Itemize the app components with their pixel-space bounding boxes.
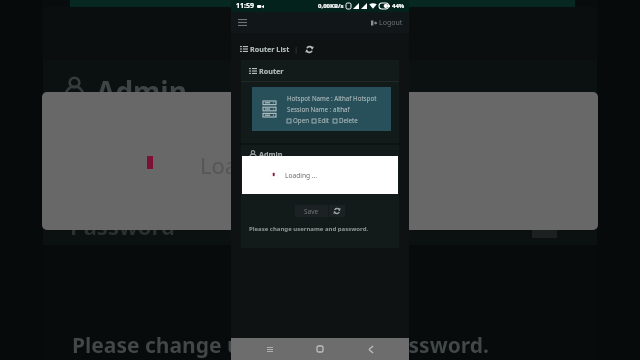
staticText: Please change username and password. bbox=[249, 225, 369, 233]
button[interactable]: Logout bbox=[365, 14, 409, 32]
staticText: Please change username and password. bbox=[72, 331, 489, 360]
staticText: | bbox=[294, 44, 299, 54]
staticText: 0,00KB/s bbox=[318, 2, 344, 10]
button[interactable]: Open navigation menu bbox=[231, 12, 253, 33]
button[interactable]: Hotspot Name : Althaf Hotspot bbox=[252, 87, 391, 131]
button[interactable]: Delete bbox=[333, 116, 358, 124]
staticText: Router List bbox=[250, 44, 290, 54]
staticText: 44% bbox=[392, 2, 405, 10]
staticText: Router bbox=[259, 66, 284, 76]
staticText: Password bbox=[70, 211, 175, 241]
button[interactable]: Back bbox=[359, 338, 383, 360]
staticText: Admin bbox=[96, 72, 187, 110]
staticText: Open bbox=[293, 116, 309, 124]
button[interactable]: Recents bbox=[258, 338, 282, 360]
staticText: Delete bbox=[339, 116, 358, 124]
button[interactable]: Save bbox=[295, 205, 328, 217]
staticText: Loading ... bbox=[285, 171, 318, 180]
staticText: Loading ... bbox=[200, 150, 307, 180]
staticText: Edit bbox=[318, 116, 330, 124]
staticText: Save bbox=[304, 207, 319, 216]
button[interactable]: Home bbox=[308, 338, 332, 360]
staticText: Session Name : althaf bbox=[287, 105, 350, 113]
button[interactable]: Refresh bbox=[329, 205, 345, 217]
button[interactable]: Refresh bbox=[303, 43, 315, 55]
staticText: Hotspot Name : Althaf Hotspot bbox=[287, 94, 377, 102]
staticText: Logout bbox=[379, 18, 403, 28]
staticText: 11:59 bbox=[236, 1, 254, 11]
button[interactable]: Open bbox=[287, 116, 309, 124]
staticText: Admin bbox=[259, 149, 283, 159]
button[interactable]: Edit bbox=[312, 116, 330, 124]
